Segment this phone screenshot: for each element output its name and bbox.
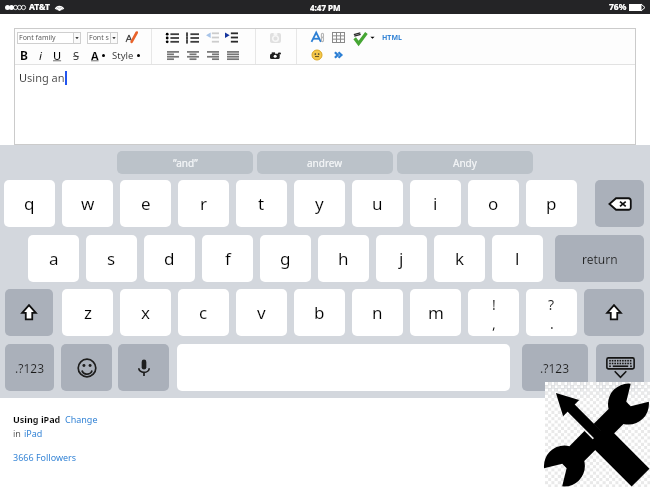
button[interactable]: More tools (334, 51, 343, 59)
button[interactable]: y (294, 180, 345, 227)
button[interactable]: Shift (584, 289, 644, 336)
button[interactable]: Align right (207, 51, 219, 60)
button[interactable]: Font family (17, 32, 81, 44)
button[interactable]: Spell check (353, 32, 367, 44)
button[interactable]: f (202, 235, 253, 282)
button[interactable]: ! (468, 289, 519, 336)
button[interactable]: .?123 (5, 344, 54, 391)
staticText: j (399, 247, 404, 270)
staticText: x (141, 301, 150, 324)
staticText: , (492, 314, 496, 331)
button[interactable]: d (144, 235, 195, 282)
button[interactable]: 3666 Followers (13, 451, 77, 463)
button[interactable]: Indent (225, 32, 238, 43)
button[interactable]: t (236, 180, 287, 227)
button[interactable]: p (526, 180, 577, 227)
button[interactable]: i (410, 180, 461, 227)
button[interactable]: Align left (167, 51, 179, 60)
button[interactable]: m (410, 289, 461, 336)
button[interactable]: Table (332, 32, 345, 43)
staticText: k (455, 247, 465, 270)
button[interactable]: Andy (397, 151, 533, 174)
button[interactable]: e (120, 180, 171, 227)
button[interactable]: b (294, 289, 345, 336)
staticText: t (258, 192, 265, 215)
button[interactable]: n (352, 289, 403, 336)
staticText: iPad (24, 427, 43, 439)
staticText: y (315, 192, 324, 215)
button[interactable]: Outdent (206, 32, 219, 43)
button[interactable]: k (434, 235, 485, 282)
button[interactable]: Shift (5, 289, 53, 336)
button[interactable]: v (236, 289, 287, 336)
button[interactable]: s (86, 235, 137, 282)
button[interactable]: Align center (187, 51, 199, 60)
button[interactable]: Style menu (137, 54, 140, 57)
staticText: Font family (19, 33, 73, 43)
button[interactable]: z (62, 289, 113, 336)
staticText: 3666 Followers (13, 451, 77, 463)
button[interactable]: return (555, 235, 644, 282)
button[interactable]: Font s (87, 32, 118, 44)
button[interactable]: S (73, 48, 80, 63)
button[interactable]: A (91, 48, 99, 63)
button[interactable]: c (178, 289, 229, 336)
staticText: “and” (173, 156, 198, 170)
button[interactable]: u (352, 180, 403, 227)
button[interactable]: Numbered list (186, 33, 199, 43)
button[interactable]: U (53, 48, 62, 63)
button[interactable]: h (318, 235, 369, 282)
staticText: h (338, 247, 349, 270)
button[interactable]: iPad (24, 427, 43, 439)
button[interactable]: q (4, 180, 55, 227)
staticText: A (91, 48, 99, 63)
button[interactable]: Style (112, 49, 134, 62)
staticText: q (24, 192, 35, 215)
staticText: ! (492, 295, 496, 314)
button[interactable]: Justify (227, 51, 239, 60)
staticText: b (314, 301, 325, 324)
button[interactable]: Text colour (102, 54, 105, 57)
button[interactable]: l (492, 235, 543, 282)
staticText: c (199, 301, 208, 324)
staticText: 76% (609, 1, 627, 13)
staticText: e (141, 192, 151, 215)
button[interactable]: “and” (117, 151, 253, 174)
button[interactable]: ? (526, 289, 577, 336)
button[interactable]: andrew (257, 151, 393, 174)
button[interactable]: Change (65, 413, 98, 425)
staticText: HTML (382, 33, 402, 43)
button[interactable]: Dictate (118, 344, 169, 391)
button[interactable]: r (178, 180, 229, 227)
button[interactable]: Spell check options (370, 35, 375, 40)
button[interactable]: Highlight colour (125, 32, 137, 44)
button[interactable]: w (62, 180, 113, 227)
button[interactable]: Bulleted list (166, 33, 179, 43)
staticText: v (257, 301, 266, 324)
button[interactable]: a (28, 235, 79, 282)
button[interactable]: Take photo (270, 51, 281, 60)
button[interactable]: x (120, 289, 171, 336)
button[interactable]: o (468, 180, 519, 227)
button[interactable]: j (376, 235, 427, 282)
staticText: p (546, 192, 557, 215)
button[interactable]: HTML (382, 33, 402, 43)
button[interactable]: Font colour (311, 32, 324, 44)
staticText: u (372, 192, 383, 215)
staticText: l (515, 247, 520, 270)
button[interactable]: Emoticon (312, 50, 322, 60)
button[interactable]: Emoji (61, 344, 112, 391)
staticText: Font s (89, 33, 110, 43)
button[interactable]: B (20, 47, 28, 63)
staticText: Change (65, 413, 98, 425)
staticText: n (372, 301, 383, 324)
button[interactable]: Delete (595, 180, 644, 227)
button[interactable]: i (39, 48, 42, 63)
button[interactable]: Hide keyboard (596, 344, 644, 391)
button[interactable]: Insert image (270, 33, 281, 43)
staticText: AT&T (29, 1, 50, 13)
button[interactable]: .?123 (522, 344, 588, 391)
staticText: ? (548, 295, 555, 314)
button[interactable]: g (260, 235, 311, 282)
